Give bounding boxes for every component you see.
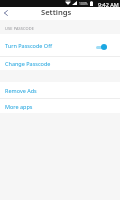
staticText: Settings [41, 7, 72, 17]
button[interactable]: Remove Ads [0, 82, 120, 98]
staticText: Turn Passcode Off [5, 42, 52, 49]
staticText: USE PASSCODE [5, 26, 34, 31]
button[interactable]: Change Passcode [0, 57, 120, 70]
staticText: 9:42 AM [98, 1, 119, 8]
staticText: Change Passcode [5, 60, 51, 67]
staticText: More apps [5, 103, 33, 110]
button[interactable]: Turn Passcode Off [0, 34, 120, 57]
button[interactable]: Back [1, 7, 11, 20]
staticText: Remove Ads [5, 87, 37, 94]
staticText: 100% [79, 1, 88, 6]
button[interactable]: More apps [0, 99, 120, 113]
